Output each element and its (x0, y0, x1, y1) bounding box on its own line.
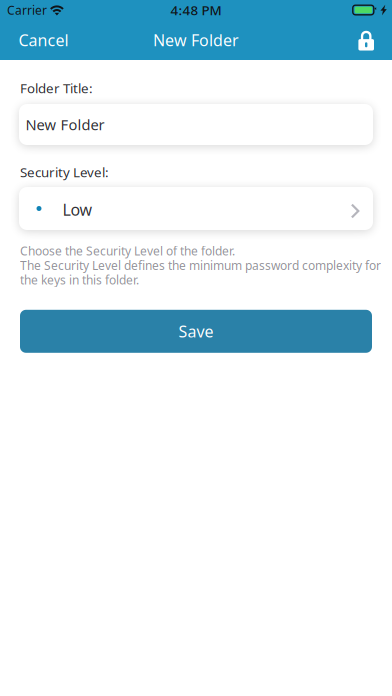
button[interactable]: Lock (342, 20, 392, 60)
staticText: Security Level: (20, 163, 109, 181)
staticText: The Security Level defines the minimum p… (20, 257, 381, 273)
staticText: Cancel (18, 29, 68, 51)
staticText: the keys in this folder. (20, 272, 139, 288)
staticText: Carrier (7, 2, 47, 18)
staticText: Choose the Security Level of the folder. (20, 243, 235, 259)
button[interactable]: Low (19, 187, 373, 230)
staticText: Save (178, 321, 213, 342)
staticText: Folder Title: (20, 79, 93, 97)
staticText: 4:48 PM (170, 1, 221, 19)
button[interactable]: Cancel (0, 20, 82, 60)
staticText: New Folder (153, 29, 239, 51)
staticText: Low (62, 199, 92, 220)
button[interactable]: Save (20, 310, 372, 353)
staticText: New Folder (25, 115, 104, 134)
